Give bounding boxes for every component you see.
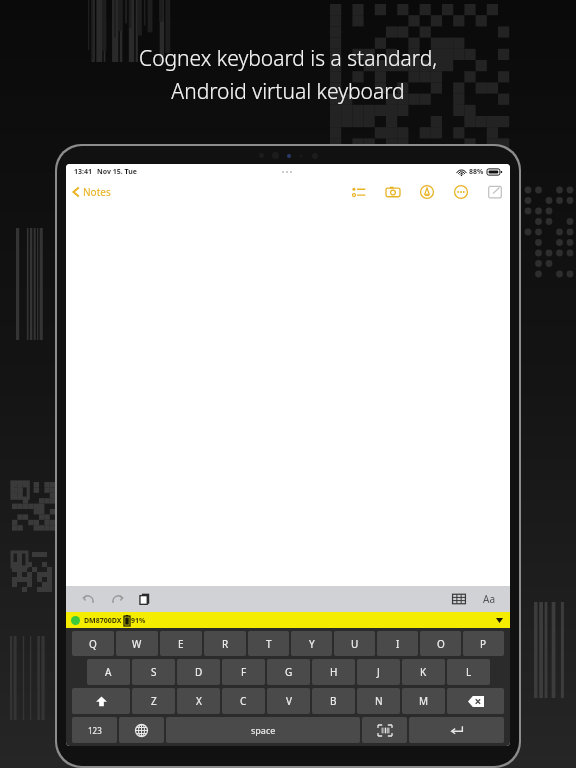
button[interactable]: B — [312, 688, 355, 714]
button[interactable]: P — [463, 631, 504, 656]
button[interactable]: T — [248, 631, 289, 656]
button[interactable]: L — [447, 659, 490, 685]
button[interactable]: Notes — [72, 185, 111, 199]
staticText: V — [286, 694, 292, 708]
button[interactable]: R — [204, 631, 246, 656]
button[interactable]: DM8700DX — [66, 612, 510, 628]
button[interactable]: O — [420, 631, 461, 656]
button[interactable]: space — [166, 717, 360, 743]
button[interactable]: E — [160, 631, 202, 656]
staticText: Z — [151, 694, 157, 708]
button[interactable]: Shift — [72, 688, 130, 714]
staticText: U — [351, 637, 359, 651]
staticText: space — [251, 724, 276, 736]
button[interactable]: M — [402, 688, 445, 714]
button[interactable]: K — [402, 659, 445, 685]
staticText: D — [195, 665, 203, 679]
button[interactable]: J — [357, 659, 400, 685]
button[interactable]: D — [177, 659, 220, 685]
staticText: 123 — [88, 725, 102, 736]
staticText: 91% — [131, 616, 146, 626]
button[interactable]: S — [132, 659, 175, 685]
button[interactable]: A — [87, 659, 130, 685]
staticText: J — [377, 665, 380, 679]
staticText: I — [396, 637, 400, 651]
button[interactable]: Compose — [486, 183, 504, 201]
button[interactable]: Q — [72, 631, 114, 656]
button[interactable]: V — [267, 688, 310, 714]
button[interactable]: Checklist — [350, 183, 368, 201]
staticText: G — [285, 665, 293, 679]
staticText: Aa — [483, 592, 495, 606]
button[interactable]: Aa — [480, 590, 498, 608]
button[interactable]: W — [116, 631, 158, 656]
staticText: B — [330, 694, 337, 708]
staticText: P — [480, 637, 487, 651]
staticText: Notes — [83, 185, 111, 199]
staticText: L — [466, 665, 472, 679]
button[interactable]: Enter — [409, 717, 504, 743]
staticText: K — [420, 665, 427, 679]
button[interactable]: F — [222, 659, 265, 685]
button[interactable]: Markup — [418, 183, 436, 201]
staticText: X — [196, 694, 202, 708]
staticText: E — [178, 637, 184, 651]
button[interactable]: Camera — [384, 183, 402, 201]
staticText: W — [132, 637, 142, 651]
staticText: H — [330, 665, 338, 679]
button[interactable]: H — [312, 659, 355, 685]
staticText: M — [419, 694, 429, 708]
button[interactable]: Undo — [80, 590, 98, 608]
staticText: C — [240, 694, 247, 708]
staticText: Android virtual keyboard — [171, 77, 405, 106]
button[interactable]: C — [222, 688, 265, 714]
button[interactable]: Redo — [108, 590, 126, 608]
staticText: N — [375, 694, 383, 708]
button[interactable]: Table — [450, 590, 468, 608]
button[interactable]: G — [267, 659, 310, 685]
button[interactable]: X — [177, 688, 220, 714]
staticText: Y — [309, 637, 315, 651]
button[interactable]: U — [334, 631, 375, 656]
button[interactable]: Backspace — [447, 688, 504, 714]
button[interactable]: Paste — [136, 590, 154, 608]
staticText: A — [105, 665, 112, 679]
staticText: Q — [89, 637, 97, 651]
staticText: F — [241, 665, 247, 679]
staticText: O — [437, 637, 445, 651]
button[interactable]: More — [452, 183, 470, 201]
staticText: T — [266, 637, 272, 651]
staticText: 88% — [469, 167, 484, 177]
button[interactable]: Language — [119, 717, 164, 743]
button[interactable]: Z — [132, 688, 175, 714]
staticText: R — [222, 637, 229, 651]
staticText: Cognex keyboard is a standard, — [139, 44, 437, 73]
button[interactable]: Y — [291, 631, 332, 656]
staticText: Nov 15. Tue — [97, 167, 137, 177]
staticText: 13:41 — [74, 167, 92, 177]
staticText: DM8700DX — [84, 616, 122, 626]
button[interactable]: 123 — [72, 717, 117, 743]
staticText: S — [151, 665, 157, 679]
button[interactable]: N — [357, 688, 400, 714]
button[interactable]: Scan barcode — [362, 717, 407, 743]
button[interactable]: I — [377, 631, 418, 656]
